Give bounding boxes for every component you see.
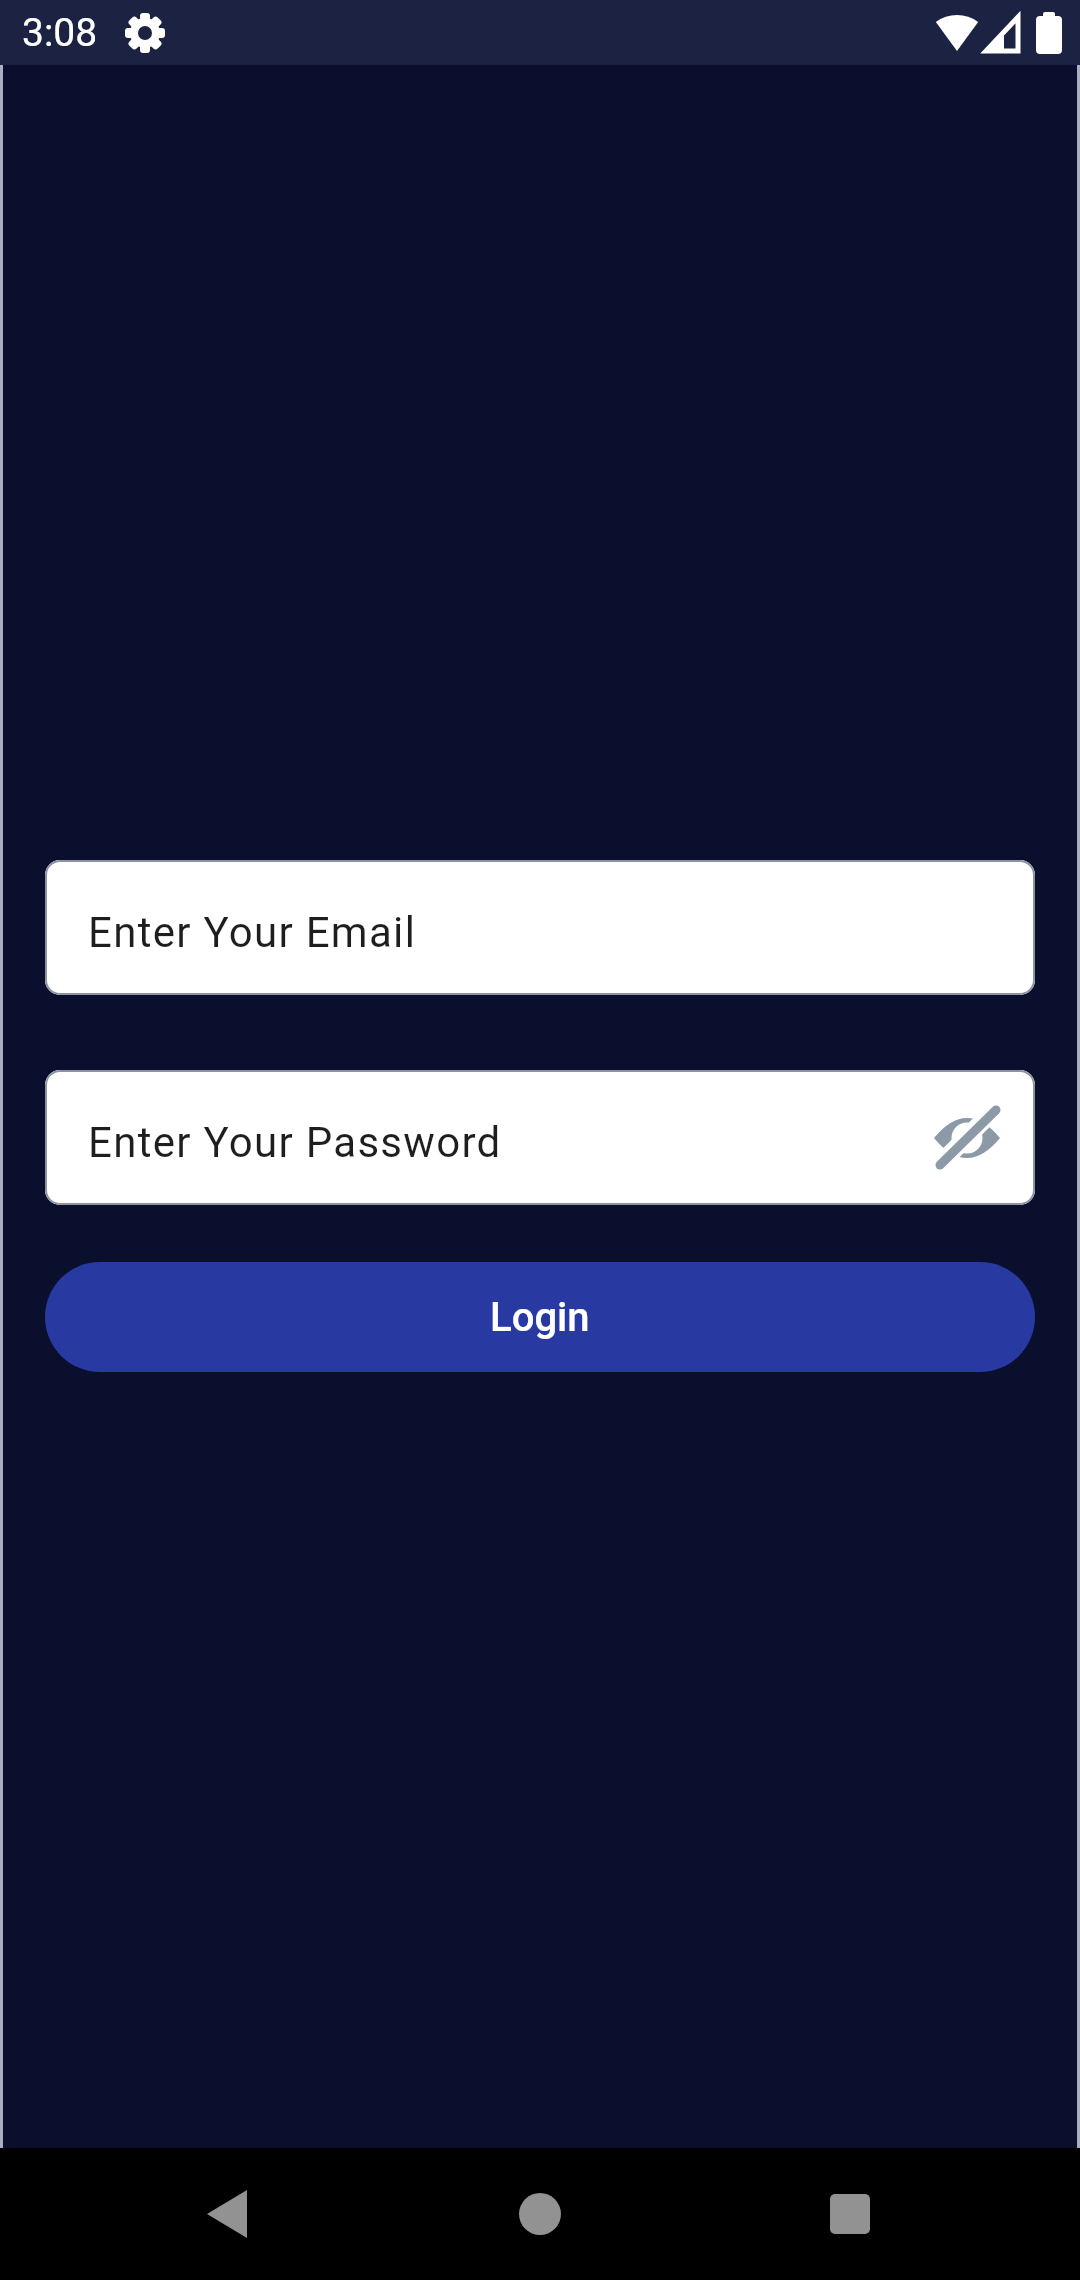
button[interactable]: Enter Your Email [45,860,1035,995]
staticText: Login [490,1294,590,1341]
button[interactable] [932,1103,1002,1173]
button[interactable]: Enter Your Password [45,1070,1035,1205]
staticText: 3:08 [22,10,98,56]
button[interactable] [830,2194,870,2234]
button[interactable]: Login [45,1262,1035,1372]
staticText: Enter Your Email [88,908,417,957]
staticText: Enter Your Password [88,1118,502,1167]
button[interactable] [207,2190,247,2238]
button[interactable] [519,2193,561,2235]
